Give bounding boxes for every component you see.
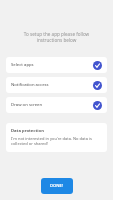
staticText: Notification access — [11, 82, 93, 88]
button[interactable]: DONE! — [41, 178, 73, 194]
staticText: Draw on screen — [11, 102, 93, 108]
staticText: I'm not interested in you're data. No da… — [11, 136, 102, 147]
staticText: Data protection — [11, 128, 44, 134]
button[interactable]: Notification access — [6, 77, 107, 93]
staticText: Select apps — [11, 62, 93, 68]
button[interactable]: Data protection — [6, 123, 107, 152]
button[interactable]: Draw on screen — [6, 97, 107, 113]
staticText: To setup the app please follow instructi… — [8, 31, 105, 43]
button[interactable]: Select apps — [6, 57, 107, 73]
staticText: DONE! — [50, 183, 64, 189]
